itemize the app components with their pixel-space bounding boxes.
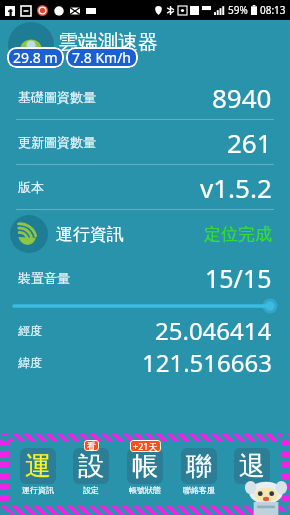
button[interactable]: 版本 [0, 165, 290, 209]
staticText: 帳 [132, 450, 158, 483]
staticText: 聯 [186, 450, 212, 483]
other: 運行資訊 [10, 215, 48, 253]
staticText: 版本 [18, 179, 44, 195]
staticText: 經度 [18, 323, 42, 338]
staticText: 定位完成 [204, 224, 272, 245]
button[interactable]: 退 [228, 442, 276, 506]
staticText: 25.046414 [155, 314, 272, 346]
staticText: 運行資訊 [56, 224, 124, 245]
button[interactable]: 經度 [0, 314, 290, 346]
staticText: 15/15 [205, 261, 272, 295]
staticText: 8940 [212, 80, 272, 115]
staticText: 7.8 Km/h [72, 48, 132, 67]
staticText: 聯絡客服 [183, 485, 215, 495]
button[interactable]: 聯 [175, 442, 223, 506]
button[interactable]: 更新圖資數量 [0, 120, 290, 164]
staticText: 緯度 [18, 355, 42, 370]
button[interactable]: 運 [14, 442, 62, 506]
staticText: +21天 [133, 440, 158, 452]
staticText: 雲端測速器 [58, 30, 158, 55]
staticText: 看 [87, 440, 96, 451]
staticText: 基礎圖資數量 [18, 89, 96, 105]
staticText: 261 [227, 125, 272, 160]
staticText: 裝置音量 [18, 270, 70, 286]
button[interactable]: 運行資訊 [0, 210, 290, 258]
button[interactable]: 帳 [121, 442, 169, 506]
staticText: 08:13 [260, 3, 286, 17]
button[interactable]: 裝置音量 [0, 258, 290, 314]
staticText: 更新圖資數量 [18, 134, 96, 150]
staticText: 帳號狀態 [129, 485, 161, 495]
staticText: 設 [78, 450, 104, 483]
staticText: 29.8 m [13, 48, 58, 67]
staticText: 運行資訊 [22, 485, 54, 495]
staticText: 運 [25, 450, 51, 483]
staticText: 設定 [83, 485, 99, 495]
staticText: 退 [239, 450, 265, 483]
staticText: 121.516663 [142, 346, 272, 378]
staticText: v1.5.2 [200, 170, 272, 205]
staticText: 59% [228, 3, 248, 17]
button[interactable]: 設 [67, 442, 115, 506]
button[interactable]: 緯度 [0, 346, 290, 378]
button[interactable]: 基礎圖資數量 [0, 75, 290, 119]
